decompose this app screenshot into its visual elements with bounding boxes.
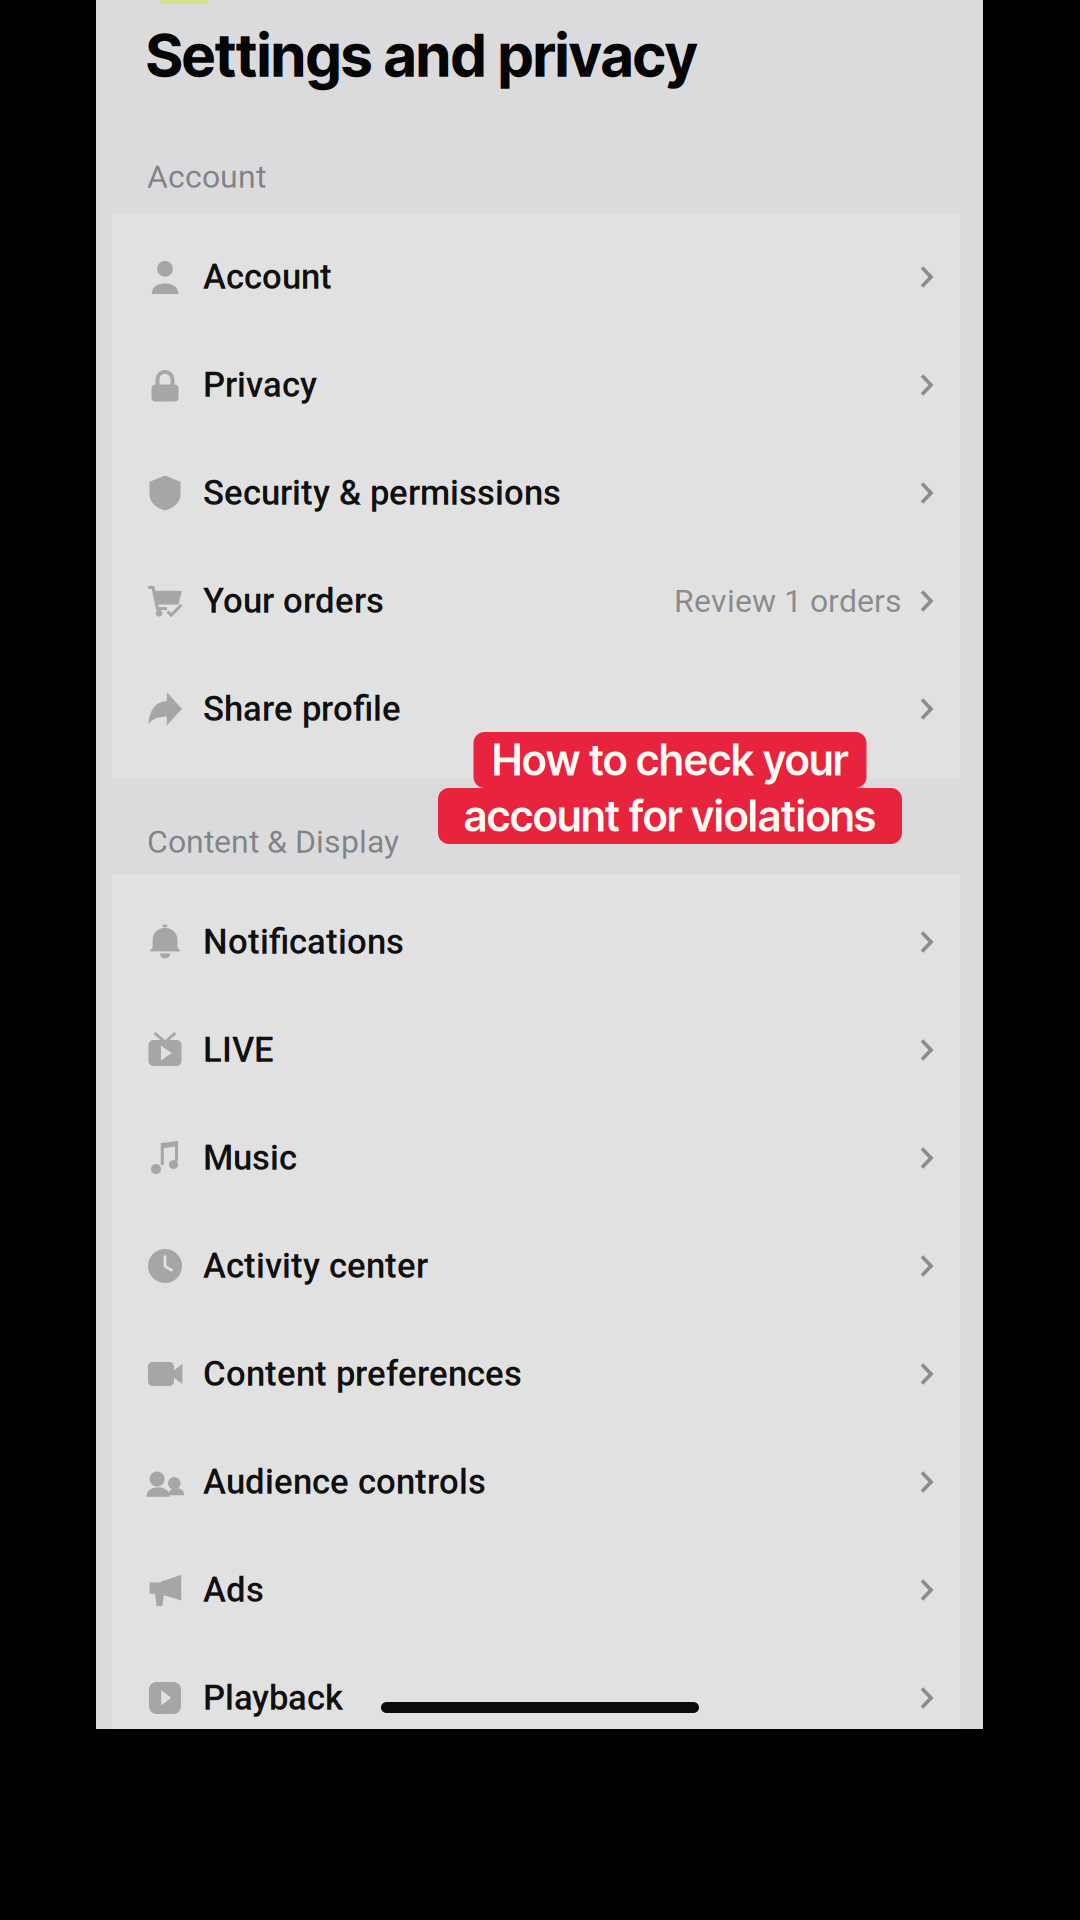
staticText: Audience controls: [203, 1462, 486, 1502]
staticText: Ads: [203, 1570, 264, 1610]
staticText: Review 1 orders: [674, 582, 902, 620]
button[interactable]: Ads: [112, 1536, 960, 1644]
button[interactable]: Playback: [112, 1644, 960, 1752]
staticText: account for violations: [464, 790, 876, 842]
staticText: Your orders: [203, 581, 384, 621]
staticText: Privacy: [203, 365, 317, 405]
button[interactable]: Audience controls: [112, 1428, 960, 1536]
staticText: Activity center: [203, 1246, 428, 1286]
staticText: Playback: [203, 1678, 343, 1718]
staticText: How to check your: [492, 734, 848, 786]
button[interactable]: Privacy: [112, 331, 960, 439]
button[interactable]: LIVE: [112, 996, 960, 1104]
staticText: Security & permissions: [203, 473, 561, 513]
staticText: LIVE: [203, 1030, 274, 1070]
button[interactable]: Your orders: [112, 547, 960, 655]
staticText: Account: [203, 257, 332, 297]
staticText: Content & Display: [147, 823, 399, 860]
button[interactable]: Activity center: [112, 1212, 960, 1320]
button[interactable]: Content preferences: [112, 1320, 960, 1428]
button[interactable]: Notifications: [112, 888, 960, 996]
staticText: Share profile: [203, 689, 401, 729]
staticText: Music: [203, 1138, 297, 1178]
button[interactable]: Share profile: [112, 655, 960, 763]
staticText: Content preferences: [203, 1354, 522, 1394]
staticText: Settings and privacy: [146, 20, 697, 91]
staticText: Account: [147, 158, 266, 195]
staticText: Notifications: [203, 922, 404, 962]
button[interactable]: Security & permissions: [112, 439, 960, 547]
button[interactable]: Account: [112, 223, 960, 331]
button[interactable]: Music: [112, 1104, 960, 1212]
